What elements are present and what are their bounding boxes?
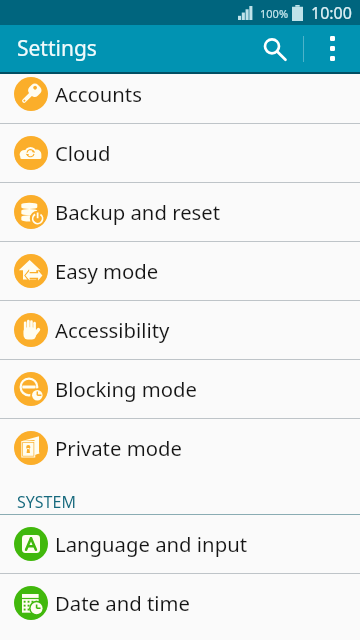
button[interactable]: Backup and reset bbox=[0, 183, 360, 241]
staticText: 100% bbox=[260, 6, 289, 21]
staticText: Accounts bbox=[55, 80, 142, 108]
staticText: Accessibility bbox=[55, 316, 170, 344]
staticText: Date and time bbox=[55, 589, 190, 617]
button[interactable]: Accounts bbox=[0, 65, 360, 123]
staticText: SYSTEM bbox=[17, 491, 76, 513]
staticText: Private mode bbox=[55, 434, 182, 462]
staticText: Blocking mode bbox=[55, 375, 198, 403]
staticText: Cloud bbox=[55, 139, 111, 167]
button[interactable]: Search bbox=[255, 25, 303, 72]
staticText: Language and input bbox=[55, 530, 248, 558]
button[interactable]: More options bbox=[304, 25, 360, 72]
button[interactable]: Accessibility bbox=[0, 301, 360, 359]
button[interactable]: Cloud bbox=[0, 124, 360, 182]
button[interactable]: Language and input bbox=[0, 515, 360, 573]
button[interactable]: Easy mode bbox=[0, 242, 360, 300]
staticText: 10:00 bbox=[311, 2, 352, 24]
button[interactable]: Date and time bbox=[0, 574, 360, 631]
button[interactable]: Private mode bbox=[0, 419, 360, 477]
button[interactable]: Blocking mode bbox=[0, 360, 360, 418]
staticText: Easy mode bbox=[55, 257, 159, 285]
staticText: Settings bbox=[17, 34, 97, 63]
staticText: Backup and reset bbox=[55, 198, 221, 226]
